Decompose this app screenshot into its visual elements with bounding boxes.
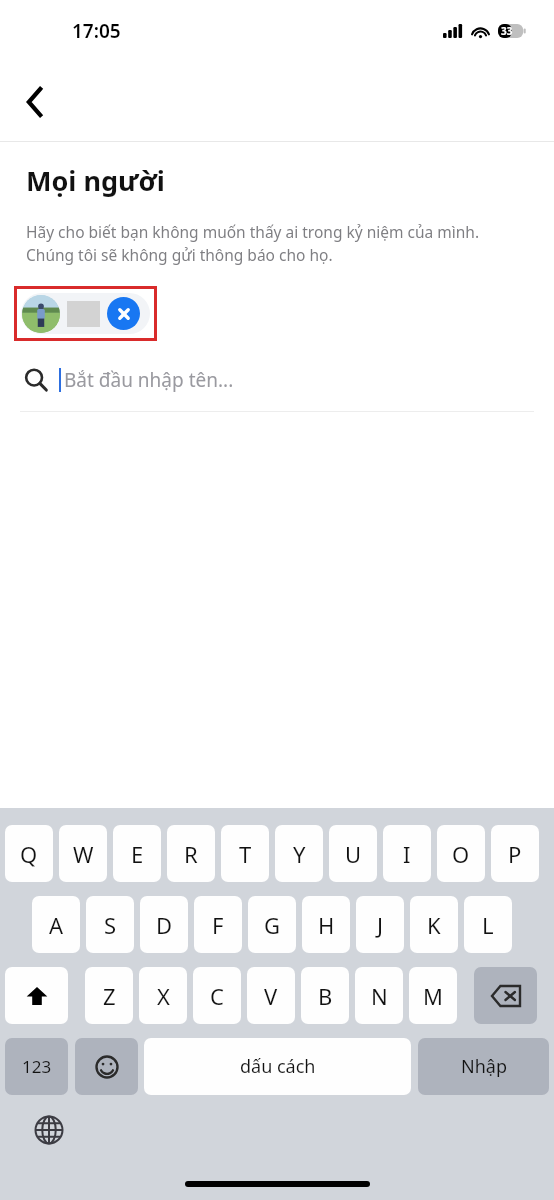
staticText: K bbox=[427, 910, 441, 940]
button[interactable]: K bbox=[410, 896, 458, 953]
staticText: X bbox=[157, 981, 170, 1011]
staticText: P bbox=[508, 839, 522, 869]
staticText: D bbox=[156, 910, 173, 940]
button[interactable]: Remove bbox=[21, 293, 150, 334]
staticText: Y bbox=[293, 839, 306, 869]
button[interactable]: G bbox=[248, 896, 296, 953]
button[interactable]: Emoji bbox=[75, 1038, 138, 1095]
staticText: Q bbox=[20, 839, 38, 869]
staticText: N bbox=[371, 981, 388, 1011]
button[interactable]: Change keyboard bbox=[32, 1113, 66, 1147]
staticText: A bbox=[49, 910, 64, 940]
staticText: dấu cách bbox=[240, 1054, 316, 1079]
button[interactable]: Backspace bbox=[474, 967, 537, 1024]
staticText: 33 bbox=[501, 24, 513, 38]
button[interactable]: Remove bbox=[107, 297, 140, 330]
staticText: M bbox=[423, 981, 443, 1011]
staticText: Nhập bbox=[461, 1054, 507, 1079]
button[interactable]: Back bbox=[12, 80, 56, 124]
button[interactable]: O bbox=[437, 825, 485, 882]
staticText: C bbox=[210, 981, 224, 1011]
button[interactable]: Y bbox=[275, 825, 323, 882]
button[interactable]: dấu cách bbox=[144, 1038, 411, 1095]
button[interactable]: Z bbox=[85, 967, 133, 1024]
button[interactable]: V bbox=[247, 967, 295, 1024]
staticText: Z bbox=[103, 981, 116, 1011]
staticText: O bbox=[452, 839, 470, 869]
button[interactable]: U bbox=[329, 825, 377, 882]
staticText: L bbox=[482, 910, 494, 940]
button[interactable]: B bbox=[301, 967, 349, 1024]
button[interactable]: M bbox=[409, 967, 457, 1024]
staticText: W bbox=[73, 839, 94, 869]
staticText: S bbox=[104, 910, 117, 940]
staticText: H bbox=[318, 910, 335, 940]
button[interactable]: J bbox=[356, 896, 404, 953]
button[interactable]: H bbox=[302, 896, 350, 953]
staticText: 123 bbox=[22, 1055, 52, 1078]
button[interactable]: D bbox=[140, 896, 188, 953]
button[interactable]: Nhập bbox=[418, 1038, 549, 1095]
staticText: Bắt đầu nhập tên... bbox=[64, 367, 234, 393]
button[interactable]: F bbox=[194, 896, 242, 953]
staticText: R bbox=[184, 839, 198, 869]
staticText: J bbox=[377, 910, 384, 940]
button[interactable]: T bbox=[221, 825, 269, 882]
staticText: 17:05 bbox=[72, 18, 121, 44]
button[interactable]: Q bbox=[5, 825, 53, 882]
staticText: Mọi người bbox=[26, 162, 165, 199]
staticText: B bbox=[318, 981, 333, 1011]
staticText: Hãy cho biết bạn không muốn thấy ai tron… bbox=[26, 221, 530, 266]
staticText: I bbox=[403, 839, 411, 869]
staticText: F bbox=[212, 910, 224, 940]
button[interactable]: P bbox=[491, 825, 539, 882]
button[interactable]: N bbox=[355, 967, 403, 1024]
button[interactable]: L bbox=[464, 896, 512, 953]
staticText: G bbox=[264, 910, 281, 940]
button[interactable]: W bbox=[59, 825, 107, 882]
button[interactable]: Shift bbox=[5, 967, 68, 1024]
staticText: U bbox=[345, 839, 362, 869]
button[interactable]: C bbox=[193, 967, 241, 1024]
button[interactable]: S bbox=[86, 896, 134, 953]
staticText: T bbox=[239, 839, 252, 869]
button[interactable]: R bbox=[167, 825, 215, 882]
button[interactable]: E bbox=[113, 825, 161, 882]
staticText: E bbox=[131, 839, 144, 869]
button[interactable]: A bbox=[32, 896, 80, 953]
staticText: V bbox=[264, 981, 278, 1011]
button[interactable]: X bbox=[139, 967, 187, 1024]
button[interactable]: Bắt đầu nhập tên... bbox=[0, 359, 554, 401]
button[interactable]: I bbox=[383, 825, 431, 882]
button[interactable]: 123 bbox=[5, 1038, 68, 1095]
